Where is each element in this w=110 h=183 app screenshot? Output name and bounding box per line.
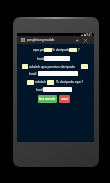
button[interactable]: Sound — [75, 38, 80, 43]
staticText: ▲ ● 9:41 — [81, 33, 92, 37]
staticText: adalah — [35, 79, 46, 84]
staticText: ? — [78, 47, 80, 52]
button[interactable]: result 2 — [38, 71, 78, 76]
button[interactable]: App icon — [21, 38, 25, 42]
button[interactable]: input 3 — [22, 64, 28, 69]
staticText: % daripada — [52, 47, 70, 52]
staticText: penghitung mudah — [27, 38, 55, 42]
staticText: hasil — [36, 87, 44, 92]
button[interactable]: Close — [83, 38, 88, 43]
staticText: % daripada apa ? — [56, 79, 84, 84]
staticText: apa yang — [33, 47, 48, 52]
button[interactable]: input 2 — [69, 48, 77, 52]
button[interactable]: input 1 — [44, 48, 52, 52]
button[interactable]: input 5 — [27, 80, 34, 85]
staticText: hasil — [37, 56, 45, 61]
button[interactable]: reset — [59, 95, 70, 103]
staticText: adalah apa peratus daripada — [29, 64, 75, 69]
staticText: reset — [61, 97, 69, 101]
staticText: hasil — [29, 71, 37, 76]
button[interactable]: result 1 — [44, 56, 70, 61]
button[interactable]: result 3 — [43, 87, 72, 92]
button[interactable]: kira semula — [38, 95, 57, 103]
staticText: kira semula — [39, 97, 56, 101]
button[interactable]: input 4 — [81, 64, 88, 69]
button[interactable]: input 6 — [47, 80, 54, 85]
